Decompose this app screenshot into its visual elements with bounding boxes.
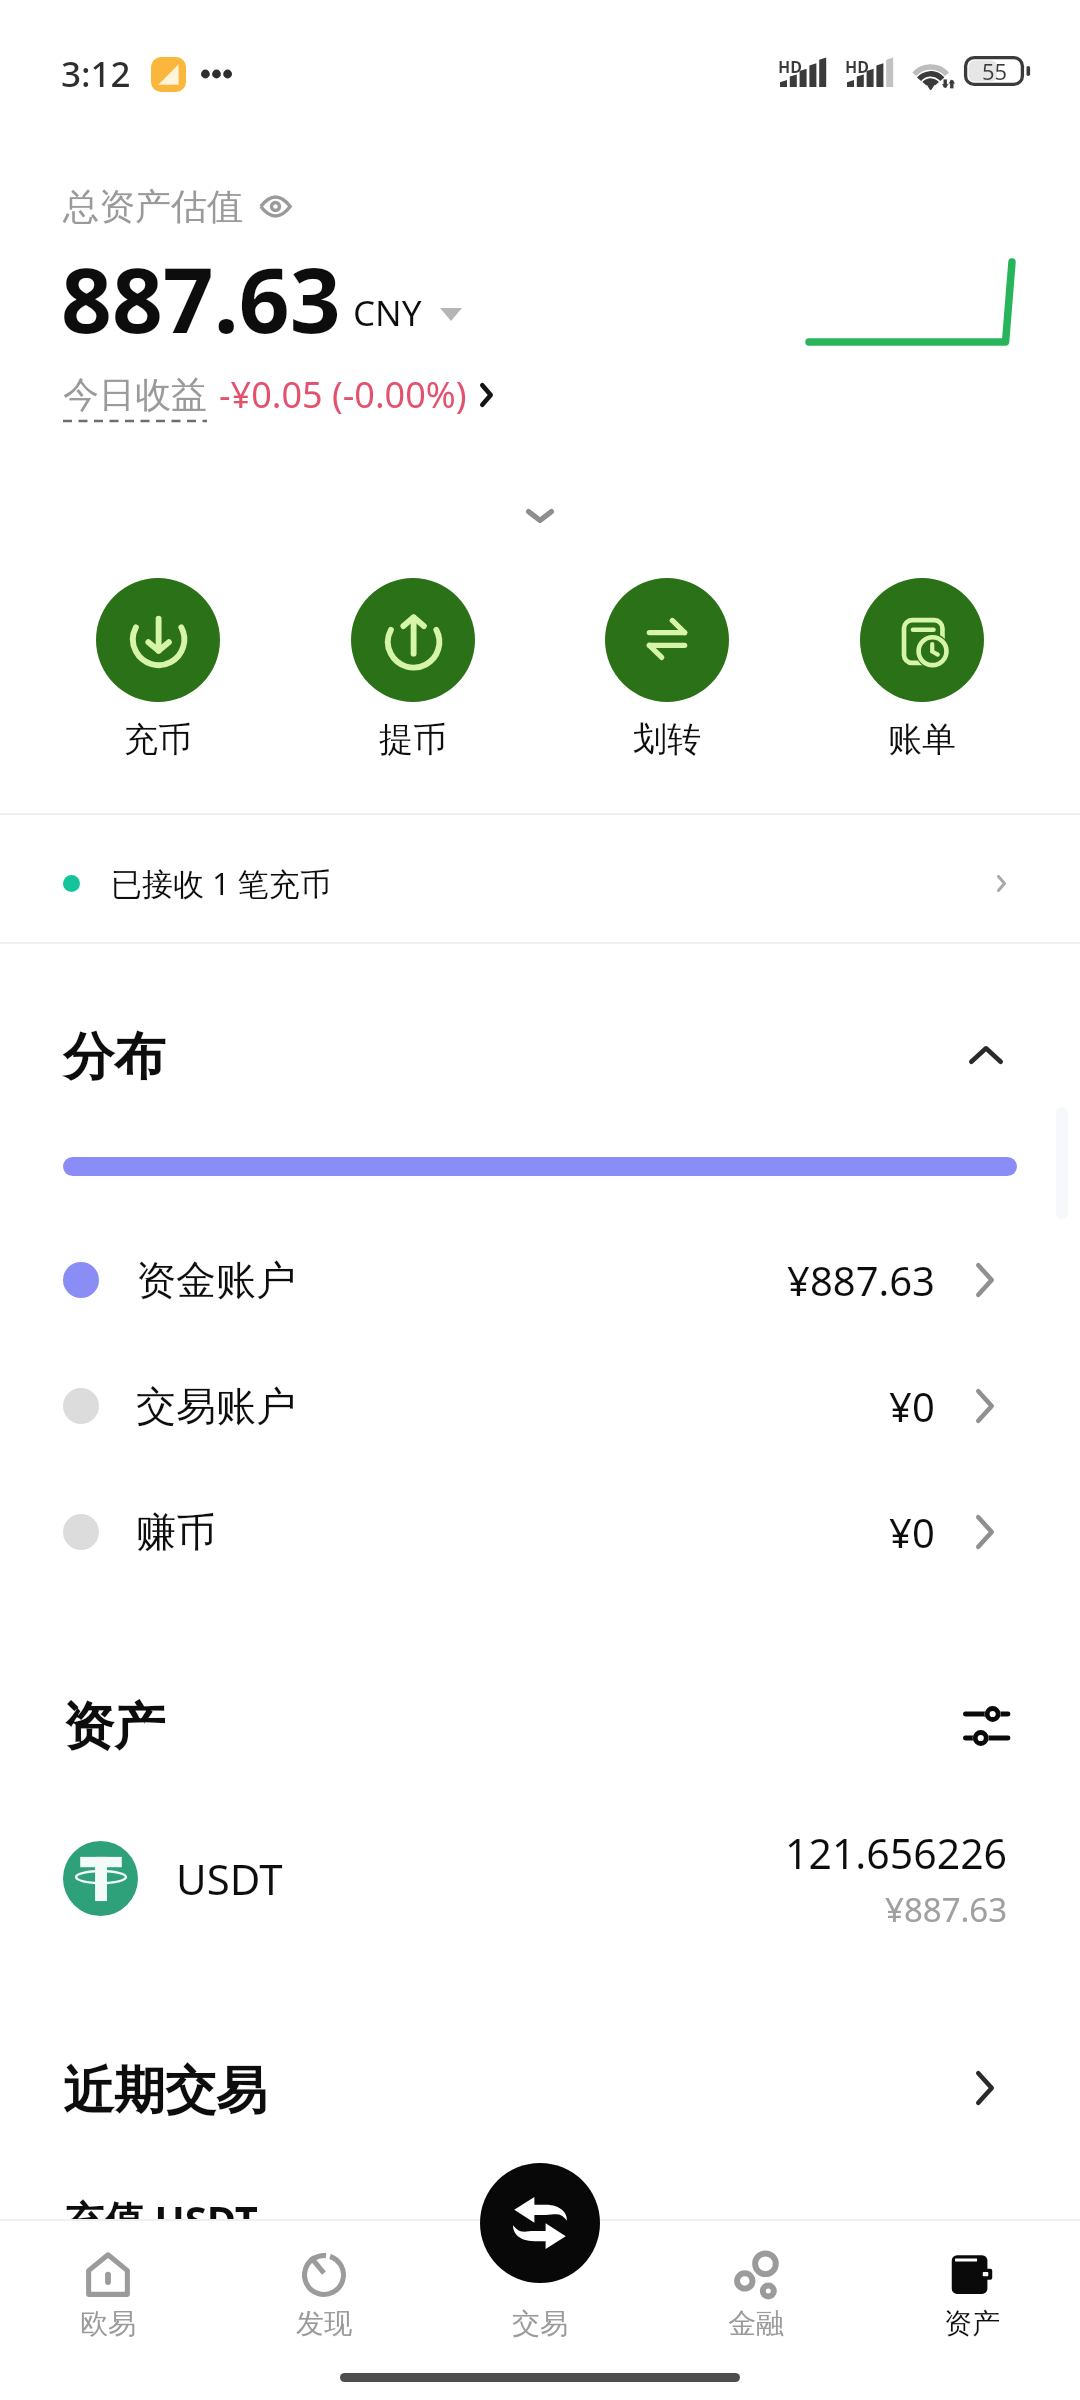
staticText: ¥0 [889, 1379, 935, 1433]
staticText: 金融 [728, 2306, 784, 2341]
staticText: 账单 [888, 718, 956, 761]
staticText: 今日收益 [63, 372, 207, 417]
staticText: 55 [982, 56, 1008, 86]
staticText: 欧易 [80, 2306, 136, 2341]
staticText: 分布 [63, 1025, 165, 1089]
staticText: HD [845, 56, 869, 78]
staticText: 资产 [63, 1695, 165, 1759]
button[interactable]: 筛选 [963, 1703, 1017, 1743]
button[interactable]: 划转 [605, 578, 729, 761]
staticText: 3:12 [61, 50, 131, 98]
staticText: 交易 [512, 2306, 568, 2341]
button[interactable]: 欧易 [0, 2246, 216, 2341]
button[interactable]: 分布 [0, 1000, 1080, 1110]
button[interactable]: 资金账户 [0, 1217, 1080, 1343]
staticText: 充币 [124, 718, 192, 761]
button[interactable]: 近期交易 [0, 2033, 1080, 2143]
staticText: 资产 [944, 2306, 1000, 2341]
staticText: 总资产估值 [63, 184, 243, 229]
staticText: HD [778, 56, 802, 78]
staticText: 提币 [379, 718, 447, 761]
staticText: 赚币 [136, 1507, 216, 1557]
button[interactable]: 发现 [216, 2246, 432, 2341]
button[interactable]: 已接收 1 笔充币 [0, 818, 1080, 948]
staticText: 资金账户 [136, 1255, 296, 1305]
staticText: ¥887.63 [885, 1887, 1008, 1932]
staticText: 121.656226 [785, 1825, 1008, 1881]
button[interactable]: 提币 [351, 578, 475, 761]
staticText: USDT [176, 1850, 283, 1907]
staticText: 充值 USDT [64, 2192, 258, 2247]
button[interactable]: 账单 [860, 578, 984, 761]
staticText: CNY [353, 289, 422, 337]
staticText: 交易账户 [136, 1381, 296, 1431]
staticText: -¥0.05 (-0.00%) [219, 370, 467, 419]
staticText: 发现 [296, 2306, 352, 2341]
button[interactable]: 交易 [480, 2163, 600, 2283]
button[interactable]: 赚币 [0, 1469, 1080, 1595]
button[interactable]: USDT [0, 1810, 1080, 1946]
staticText: 划转 [633, 718, 701, 761]
staticText: 887.63 [61, 238, 341, 359]
staticText: ¥887.63 [787, 1253, 935, 1307]
button[interactable]: 金融 [648, 2246, 864, 2341]
button[interactable]: 资产 [864, 2246, 1080, 2341]
button[interactable]: 交易 [432, 2246, 648, 2341]
staticText: 近期交易 [63, 2059, 267, 2123]
staticText: 已接收 1 笔充币 [111, 862, 331, 904]
button[interactable]: 交易账户 [0, 1343, 1080, 1469]
staticText: ¥0 [889, 1505, 935, 1559]
button[interactable]: 充币 [96, 578, 220, 761]
